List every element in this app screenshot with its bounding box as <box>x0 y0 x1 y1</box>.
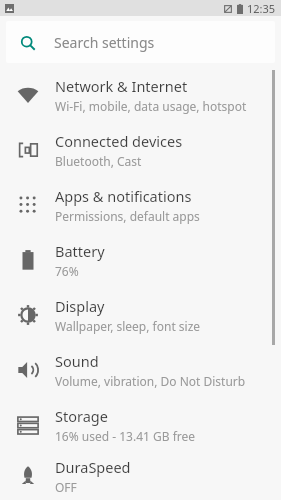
staticText: 76% <box>55 263 79 279</box>
staticText: Volume, vibration, Do Not Disturb <box>55 373 246 389</box>
button[interactable]: Search settings <box>6 21 275 63</box>
staticText: OFF <box>55 479 77 495</box>
staticText: 16% used - 13.41 GB free <box>55 428 196 444</box>
button[interactable]: DuraSpeed <box>0 452 281 500</box>
staticText: Wi-Fi, mobile, data usage, hotspot <box>55 98 247 114</box>
staticText: Network & Internet <box>55 76 188 96</box>
staticText: Search settings <box>54 33 155 52</box>
button[interactable]: Sound <box>0 342 281 397</box>
staticText: Sound <box>55 351 99 371</box>
button[interactable]: Apps & notifications <box>0 177 281 232</box>
staticText: 12:35 <box>247 1 276 16</box>
staticText: Apps & notifications <box>55 186 192 206</box>
staticText: Display <box>55 296 105 316</box>
staticText: Bluetooth, Cast <box>55 153 142 169</box>
button[interactable]: Connected devices <box>0 122 281 177</box>
button[interactable]: Network & Internet <box>0 67 281 122</box>
staticText: Permissions, default apps <box>55 208 200 224</box>
staticText: DuraSpeed <box>55 457 131 477</box>
button[interactable]: Display <box>0 287 281 342</box>
button[interactable]: Storage <box>0 397 281 452</box>
staticText: Wallpaper, sleep, font size <box>55 318 201 334</box>
staticText: Connected devices <box>55 131 183 151</box>
staticText: Storage <box>55 406 108 426</box>
staticText: Battery <box>55 241 105 261</box>
button[interactable]: Battery <box>0 232 281 287</box>
